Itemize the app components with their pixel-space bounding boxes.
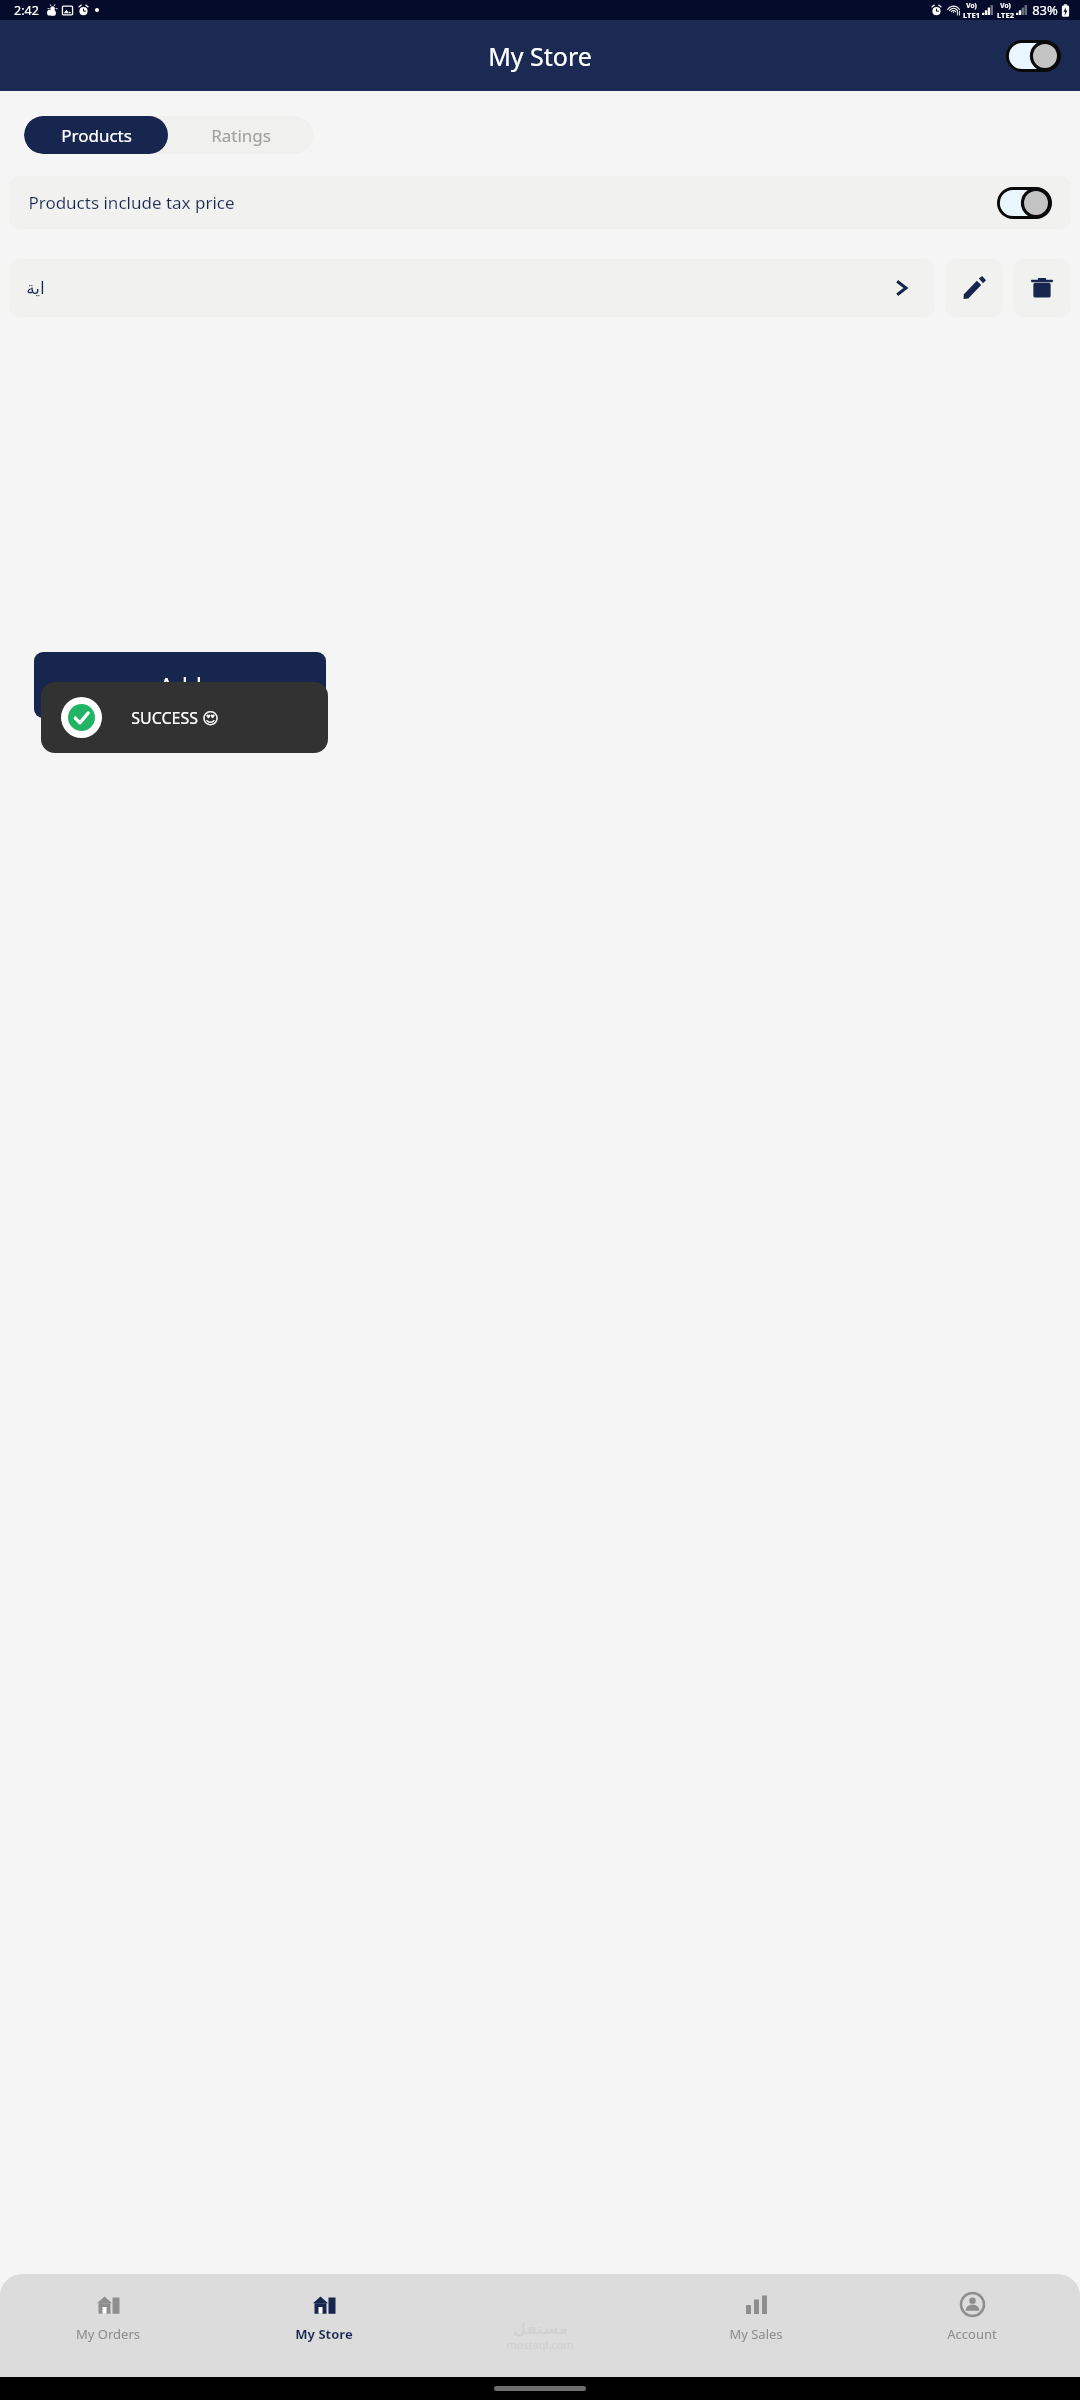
staticText: 83% <box>1032 1 1058 19</box>
button[interactable]: Edit <box>945 259 1003 317</box>
button[interactable]: Products <box>24 116 168 154</box>
button[interactable]: My Orders <box>0 2274 216 2377</box>
staticText: مستقل <box>513 2320 568 2337</box>
staticText: Ratings <box>211 124 271 147</box>
button[interactable]: اية <box>9 259 935 317</box>
staticText: My Store <box>488 39 592 73</box>
staticText: LTE2 <box>997 10 1014 20</box>
button[interactable]: Store status toggle <box>1006 40 1061 72</box>
staticText: Account <box>947 2325 997 2343</box>
staticText: My Sales <box>729 2325 783 2343</box>
staticText: My Orders <box>76 2325 140 2343</box>
staticText: Vo) <box>966 1 977 10</box>
staticText: Products <box>61 124 132 147</box>
button[interactable]: Delete <box>1013 259 1071 317</box>
staticText: My Store <box>295 2325 353 2343</box>
staticText: LTE1 <box>963 10 980 20</box>
button[interactable]: My Store <box>216 2274 432 2377</box>
button[interactable]: Ratings <box>168 116 313 154</box>
staticText: اية <box>26 278 45 298</box>
button[interactable]: Add <box>34 652 326 718</box>
button[interactable]: Account <box>864 2274 1080 2377</box>
button[interactable]: My Sales <box>648 2274 864 2377</box>
staticText: Vo) <box>1000 1 1011 10</box>
staticText: SUCCESS 😍 <box>131 707 219 729</box>
staticText: Products include tax price <box>28 191 235 214</box>
button[interactable]: Products include tax price <box>9 176 1071 229</box>
staticText: Add <box>159 670 202 701</box>
staticText: mostaql.com <box>506 2337 574 2352</box>
staticText: 2:42 <box>14 2 39 19</box>
